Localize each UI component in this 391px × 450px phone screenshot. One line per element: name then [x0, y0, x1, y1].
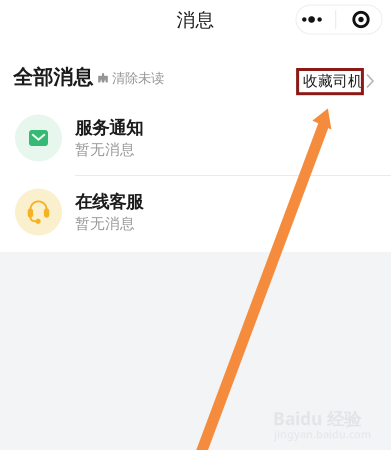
button[interactable]: 服务通知 [0, 101, 391, 175]
staticText: 收藏司机 [303, 72, 363, 90]
staticText: 全部消息 [13, 65, 93, 90]
button[interactable]: 清除未读 [95, 62, 167, 94]
button[interactable]: 在线客服 [0, 175, 391, 249]
button[interactable]: 收藏司机 [303, 65, 374, 97]
staticText: 消息 [176, 8, 214, 31]
staticText: Baidu 经验 [273, 407, 361, 430]
button[interactable]: Close mini program [338, 5, 383, 34]
staticText: 在线客服 [75, 191, 143, 213]
staticText: 清除未读 [112, 70, 164, 86]
staticText: 服务通知 [75, 117, 143, 139]
staticText: jingyan.baidu.com [274, 427, 371, 441]
staticText: 暂无消息 [75, 215, 135, 233]
button[interactable]: More [296, 5, 336, 34]
staticText: 暂无消息 [75, 141, 135, 159]
